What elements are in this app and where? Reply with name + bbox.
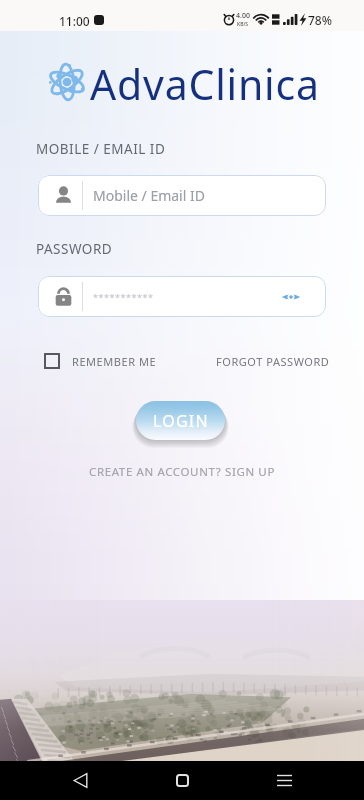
staticText: 4.00 [236,11,250,21]
staticText: KB/S [237,21,249,28]
button[interactable]: Mobile / Email ID [38,175,326,216]
staticText: *********** [93,291,154,303]
staticText: PASSWORD [36,240,113,258]
button[interactable]: *********** [38,276,326,317]
button[interactable]: LOGIN [136,401,225,440]
staticText: LOGIN [153,410,209,432]
button[interactable]: Back [58,761,102,800]
button[interactable]: Home [160,761,204,800]
staticText: 11:00 [59,13,90,29]
staticText: REMEMBER ME [72,354,157,369]
button[interactable]: FORGOT PASSWORD [216,354,330,369]
button[interactable]: REMEMBER ME [44,353,157,369]
staticText: MOBILE / EMAIL ID [36,140,166,158]
button[interactable]: Recent apps [262,761,306,800]
button[interactable]: CREATE AN ACCOUNT? SIGN UP [0,464,364,480]
staticText: Mobile / Email ID [93,186,205,205]
staticText: AdvaClinica [90,56,320,112]
staticText: 78% [308,12,332,28]
button[interactable]: Show password [274,280,308,314]
